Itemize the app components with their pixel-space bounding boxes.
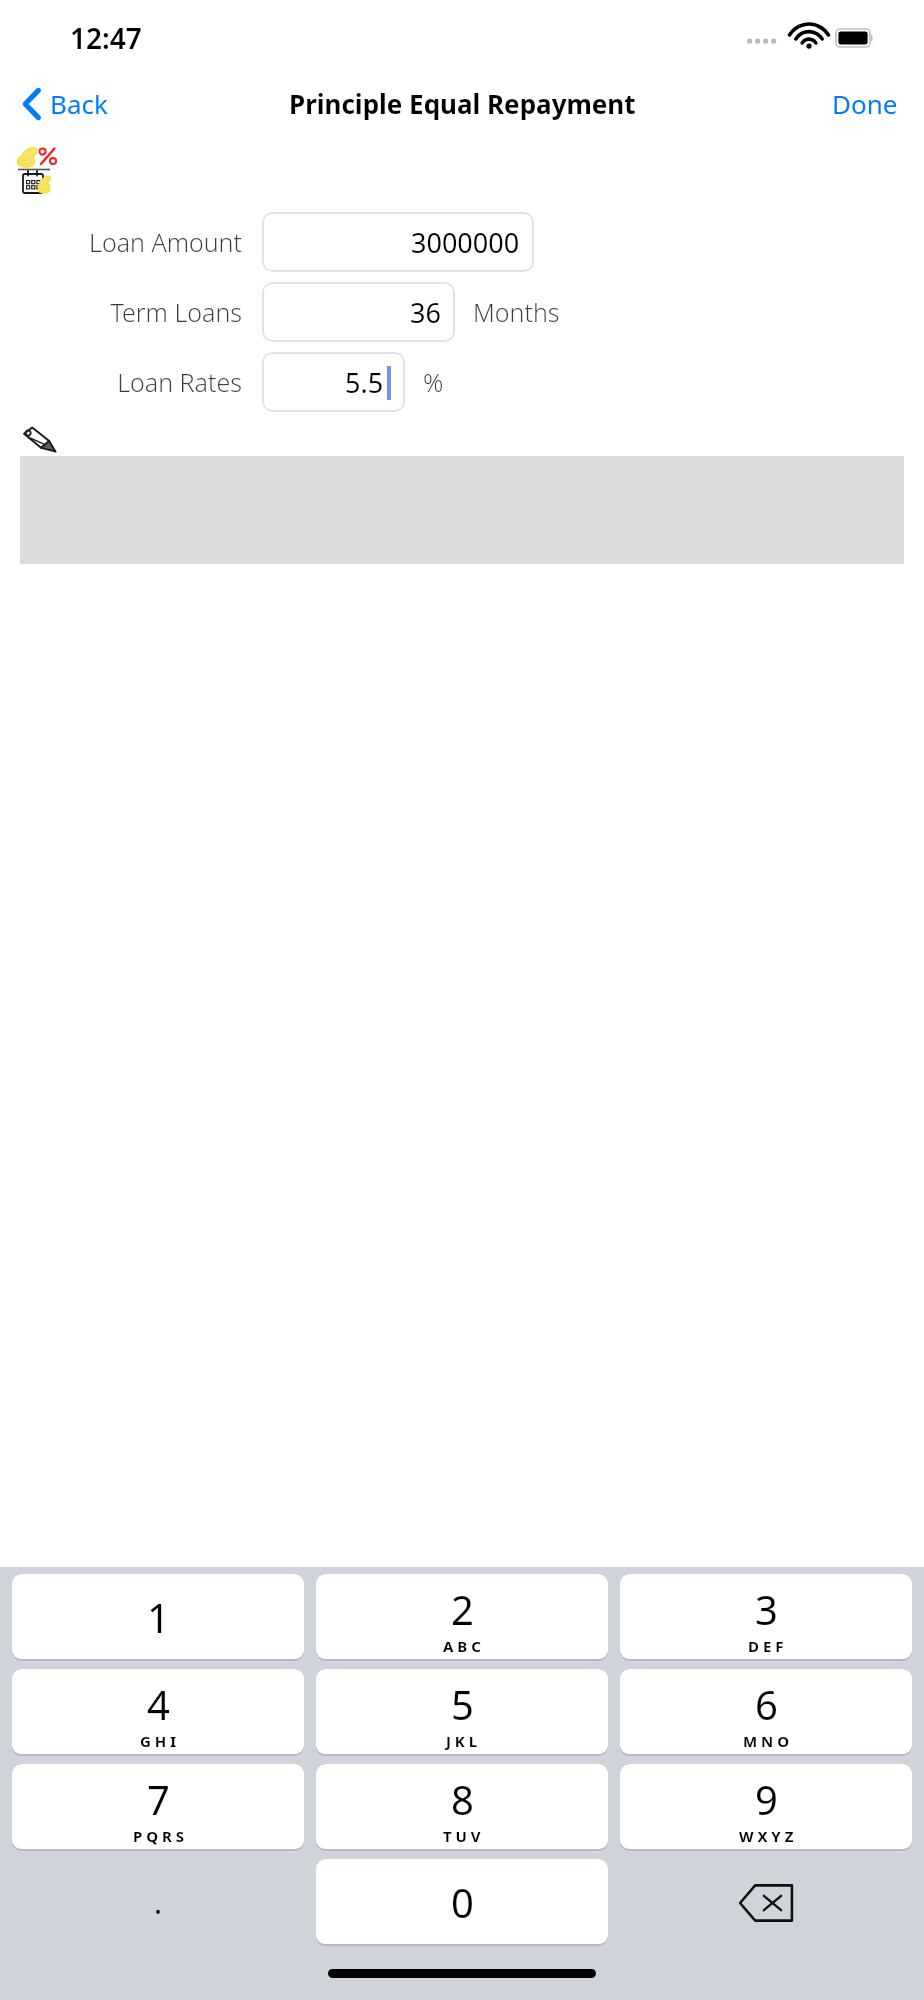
staticText: 3000000 bbox=[411, 224, 520, 261]
button[interactable]: 9 bbox=[620, 1764, 912, 1849]
staticText: Loan Rates bbox=[117, 365, 242, 399]
button[interactable]: 36 bbox=[262, 282, 455, 342]
button[interactable]: 3 bbox=[620, 1574, 912, 1659]
staticText: Done bbox=[832, 86, 898, 121]
staticText: 5 bbox=[451, 1677, 474, 1731]
staticText: 3 bbox=[755, 1582, 778, 1636]
button[interactable]: 2 bbox=[316, 1574, 608, 1659]
staticText: 36 bbox=[410, 294, 441, 331]
button[interactable]: 5 bbox=[316, 1669, 608, 1754]
button[interactable]: Back bbox=[18, 80, 112, 127]
other: Notes bbox=[22, 426, 56, 452]
button[interactable]: 6 bbox=[620, 1669, 912, 1754]
staticText: Principle Equal Repayment bbox=[289, 86, 636, 121]
staticText: 1 bbox=[147, 1590, 170, 1644]
other: Interest rate per period bbox=[14, 142, 76, 200]
button[interactable]: 0 bbox=[316, 1859, 608, 1944]
staticText: 7 bbox=[147, 1772, 170, 1826]
staticText: M N O bbox=[743, 1731, 790, 1751]
button[interactable]: 5.5 bbox=[262, 352, 405, 412]
button[interactable]: Done bbox=[826, 80, 904, 127]
staticText: W X Y Z bbox=[739, 1826, 794, 1846]
staticText: 12:47 bbox=[70, 19, 142, 57]
staticText: 2 bbox=[451, 1582, 474, 1636]
staticText: G H I bbox=[140, 1731, 176, 1751]
button[interactable]: 7 bbox=[12, 1764, 304, 1849]
staticText: A B C bbox=[443, 1636, 481, 1656]
button[interactable]: Delete bbox=[620, 1859, 912, 1946]
staticText: Months bbox=[473, 295, 560, 329]
button[interactable]: 3000000 bbox=[262, 212, 534, 272]
staticText: Back bbox=[50, 86, 108, 121]
staticText: P Q R S bbox=[133, 1826, 184, 1846]
button[interactable]: 8 bbox=[316, 1764, 608, 1849]
button[interactable]: 4 bbox=[12, 1669, 304, 1754]
staticText: J K L bbox=[446, 1731, 478, 1751]
staticText: % bbox=[423, 365, 444, 399]
staticText: T U V bbox=[443, 1826, 481, 1846]
button[interactable]: . bbox=[12, 1859, 304, 1946]
staticText: Term Loans bbox=[110, 295, 242, 329]
staticText: 0 bbox=[451, 1875, 474, 1929]
staticText: . bbox=[154, 1882, 163, 1923]
staticText: 8 bbox=[451, 1772, 474, 1826]
staticText: 6 bbox=[755, 1677, 778, 1731]
staticText: 4 bbox=[147, 1677, 170, 1731]
button[interactable]: 1 bbox=[12, 1574, 304, 1659]
staticText: 5.5 bbox=[345, 364, 384, 401]
staticText: Loan Amount bbox=[89, 225, 242, 259]
staticText: D E F bbox=[748, 1636, 784, 1656]
staticText: 9 bbox=[755, 1772, 778, 1826]
